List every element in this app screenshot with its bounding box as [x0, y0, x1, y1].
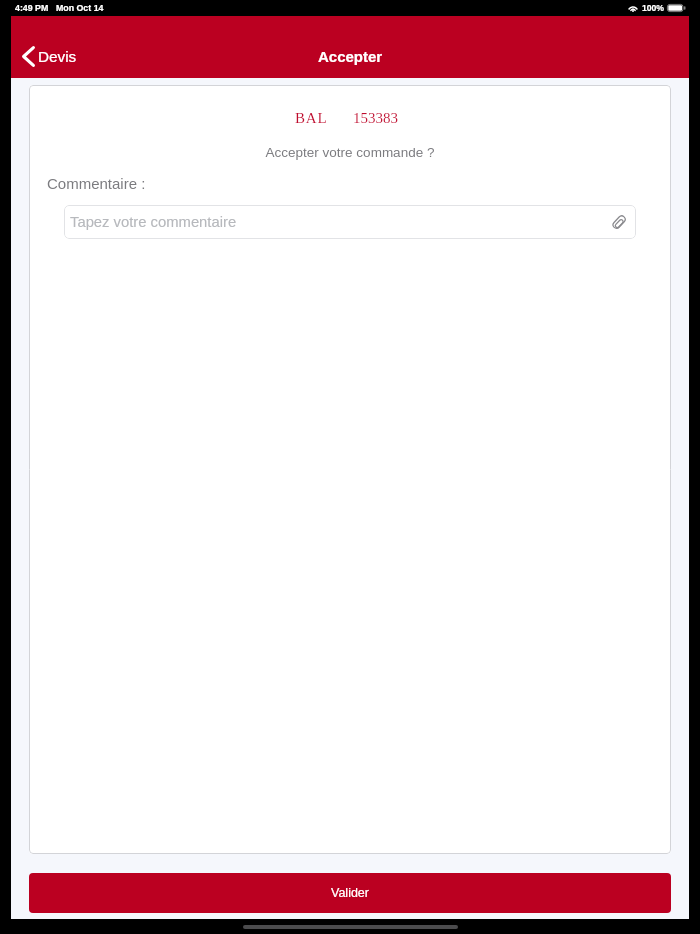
staticText: Accepter votre commande ?: [29, 145, 671, 160]
button[interactable]: Devis: [22, 46, 77, 67]
staticText: Valider: [331, 886, 369, 900]
staticText: 4:49 PM: [15, 3, 49, 13]
staticText: Commentaire :: [47, 175, 146, 192]
staticText: Accepter: [318, 48, 383, 65]
staticText: Tapez votre commentaire: [70, 214, 237, 231]
staticText: Devis: [38, 48, 77, 65]
staticText: Mon Oct 14: [56, 3, 104, 13]
button[interactable]: Tapez votre commentaire: [64, 205, 636, 239]
button[interactable]: Valider: [29, 873, 671, 913]
staticText: 100%: [642, 3, 664, 13]
staticText: 153383: [353, 110, 398, 127]
staticText: BAL: [295, 110, 328, 127]
button[interactable]: Attach file: [612, 215, 627, 230]
